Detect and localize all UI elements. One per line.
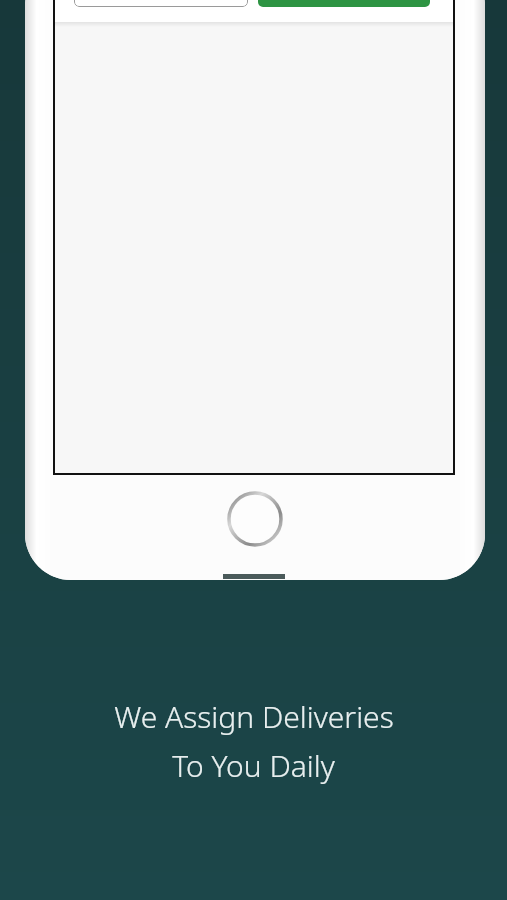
staticText: To You Daily (172, 745, 335, 786)
button[interactable]: Accept (258, 0, 430, 7)
staticText: We Assign Deliveries (114, 696, 394, 737)
button[interactable]: Ignore (74, 0, 248, 7)
other: Home button (227, 491, 283, 547)
